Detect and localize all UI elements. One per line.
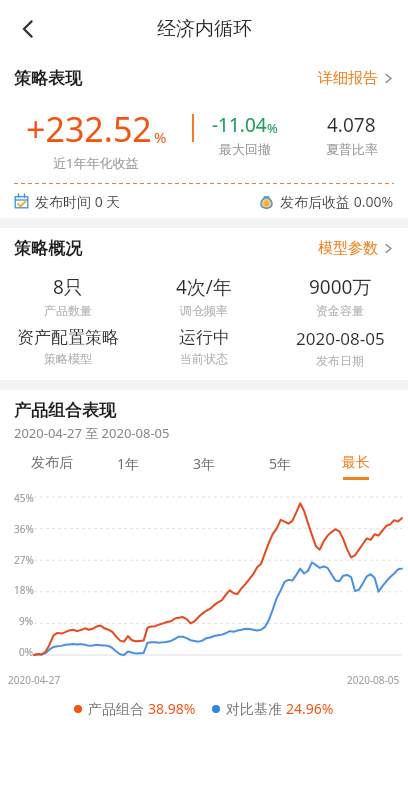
staticText: 27% — [14, 553, 34, 567]
staticText: 3年 — [193, 454, 216, 473]
button[interactable]: 最长 — [318, 454, 394, 480]
staticText: +232.52 — [26, 106, 152, 152]
staticText: 发布后 — [31, 454, 73, 472]
staticText: 45% — [14, 491, 34, 505]
staticText: 18% — [14, 583, 34, 597]
staticText: % — [154, 127, 167, 147]
staticText: 模型参数 — [318, 239, 378, 258]
staticText: 发布日期 — [316, 353, 364, 368]
staticText: 近1年年化收益 — [53, 154, 139, 172]
staticText: 策略概况 — [14, 238, 82, 259]
staticText: -11.04 — [212, 112, 267, 138]
staticText: 最长 — [342, 454, 370, 472]
staticText: 策略模型 — [44, 351, 92, 366]
staticText: 夏普比率 — [326, 141, 378, 157]
staticText: 资金容量 — [316, 303, 364, 318]
button[interactable]: 5年 — [242, 454, 318, 481]
button[interactable]: Back — [6, 7, 50, 51]
button[interactable]: 3年 — [166, 454, 242, 481]
staticText: 9% — [19, 614, 34, 628]
staticText: 运行中 — [179, 327, 230, 348]
staticText: 发布时间 0 天 — [35, 192, 121, 211]
button[interactable]: 发布后 — [14, 454, 90, 480]
staticText: 产品组合表现 — [14, 400, 116, 421]
button[interactable]: 模型参数 — [318, 239, 394, 258]
staticText: 策略表现 — [14, 68, 82, 89]
staticText: 2020-08-05 — [296, 327, 385, 350]
button[interactable]: 1年 — [90, 454, 166, 481]
staticText: 详细报告 — [318, 69, 378, 88]
staticText: 0% — [19, 645, 34, 659]
staticText: % — [267, 119, 278, 137]
staticText: 38.98% — [148, 699, 196, 718]
staticText: 最大回撤 — [219, 141, 271, 157]
staticText: 调仓频率 — [180, 303, 228, 318]
staticText: 对比基准 — [226, 699, 286, 718]
staticText: 8只 — [53, 274, 83, 300]
button[interactable]: 详细报告 — [318, 69, 394, 88]
staticText: 经济内循环 — [157, 17, 252, 41]
staticText: 1年 — [117, 454, 140, 473]
staticText: 2020-08-05 — [347, 673, 400, 687]
staticText: 2020-04-27 至 2020-08-05 — [14, 424, 170, 442]
staticText: 发布后收益 0.00% — [280, 192, 394, 211]
staticText: 4次/年 — [176, 274, 232, 300]
staticText: 资产配置策略 — [17, 327, 119, 348]
staticText: 当前状态 — [180, 351, 228, 366]
staticText: 产品数量 — [44, 303, 92, 318]
staticText: 2020-04-27 — [8, 673, 61, 687]
staticText: 9000万 — [309, 274, 372, 300]
staticText: 5年 — [269, 454, 292, 473]
staticText: 24.96% — [286, 699, 334, 718]
staticText: 产品组合 — [88, 699, 148, 718]
staticText: 36% — [14, 522, 34, 536]
staticText: 4.078 — [327, 112, 376, 138]
